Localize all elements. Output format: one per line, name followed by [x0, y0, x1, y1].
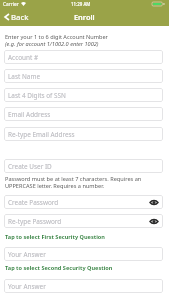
- button[interactable]: Last 4 Digits of SSN: [4, 88, 163, 102]
- button[interactable]: Show password: [148, 196, 160, 208]
- button[interactable]: Create Password: [4, 195, 163, 209]
- staticText: UPPERCASE letter. Requires a number.: [5, 182, 105, 190]
- staticText: Tap to select Second Security Question: [5, 264, 113, 272]
- button[interactable]: Your Answer: [4, 247, 163, 261]
- button[interactable]: Back: [5, 12, 29, 23]
- staticText: Enroll: [74, 12, 95, 22]
- staticText: Re-type Password: [8, 217, 62, 226]
- button[interactable]: Create User ID: [4, 159, 163, 173]
- staticText: Re-type Email Address: [8, 130, 75, 139]
- staticText: Your Answer: [8, 250, 46, 259]
- staticText: Email Address: [8, 110, 51, 119]
- staticText: Password must be at least 7 characters. …: [5, 175, 142, 183]
- staticText: Enter your 1 to 6 digit Account Number: [5, 33, 108, 41]
- staticText: Account #: [8, 53, 39, 62]
- staticText: Create Password: [8, 198, 59, 207]
- staticText: Create User ID: [8, 162, 52, 171]
- staticText: Your Answer: [8, 282, 46, 291]
- staticText: (e.g. for account 1/1002.0 enter 1002): [5, 40, 99, 48]
- button[interactable]: Tap to select First Security Question: [0, 231, 169, 243]
- staticText: Carrier: [3, 1, 19, 8]
- staticText: Back: [11, 12, 29, 23]
- button[interactable]: Email Address: [4, 107, 163, 121]
- button[interactable]: Account #: [4, 50, 163, 64]
- staticText: Last 4 Digits of SSN: [8, 91, 66, 100]
- staticText: Last Name: [8, 72, 40, 81]
- staticText: Tap to select First Security Question: [5, 233, 105, 241]
- button[interactable]: Tap to select Second Security Question: [0, 262, 169, 274]
- button[interactable]: Your Answer: [4, 279, 163, 293]
- button[interactable]: Show password: [148, 215, 160, 227]
- button[interactable]: Last Name: [4, 69, 163, 83]
- button[interactable]: Re-type Email Address: [4, 127, 163, 141]
- staticText: 11:29 AM: [71, 1, 91, 7]
- button[interactable]: Re-type Password: [4, 214, 163, 228]
